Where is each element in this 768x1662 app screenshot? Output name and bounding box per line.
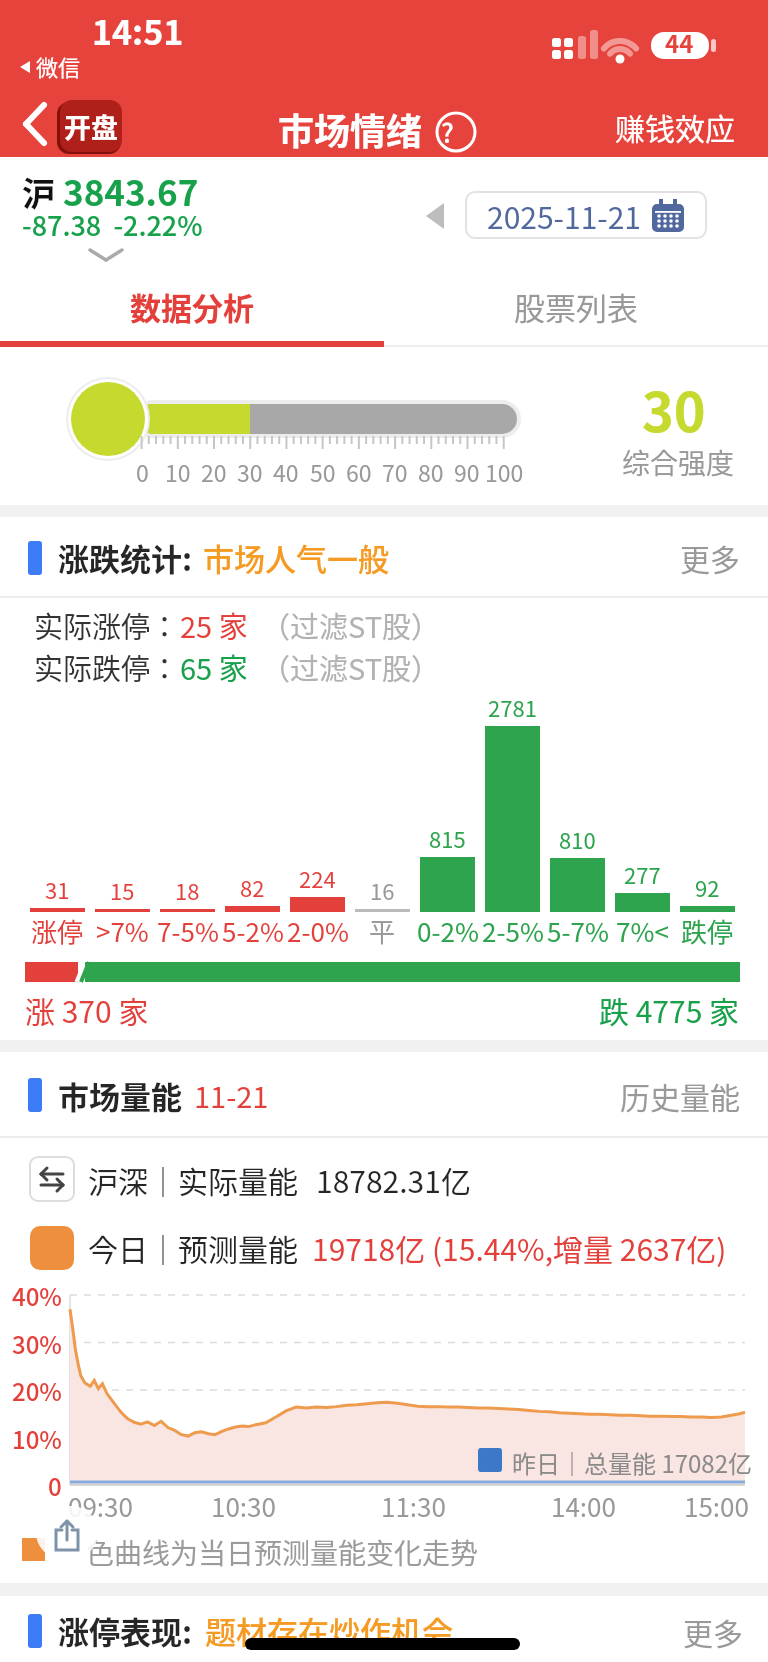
staticText: 跌停	[681, 912, 734, 950]
staticText: 31	[45, 873, 70, 905]
staticText: -87.38 -2.22%	[22, 205, 203, 244]
staticText: 18	[175, 874, 200, 906]
button[interactable]: 更多	[680, 536, 740, 579]
staticText: 277	[624, 858, 661, 890]
staticText: 赚钱效应	[615, 105, 735, 148]
button[interactable]: 股票列表	[384, 272, 768, 341]
staticText: 市场情绪	[278, 103, 423, 155]
staticText: （过滤ST股）	[248, 646, 441, 688]
staticText: 今日｜预测量能	[88, 1226, 298, 1269]
staticText: 70	[382, 455, 408, 488]
staticText: 微信	[36, 50, 81, 82]
staticText: 更多	[680, 536, 740, 579]
staticText: 10%	[12, 1421, 62, 1456]
staticText: 2-5%	[482, 912, 544, 950]
staticText: 10:30	[211, 1487, 276, 1525]
staticText: 5-7%	[547, 912, 609, 950]
staticText: 14:00	[551, 1487, 616, 1525]
button[interactable]: 数据分析	[0, 272, 384, 341]
staticText: 60	[346, 455, 372, 488]
staticText: 5-2%	[222, 912, 284, 950]
staticText: 10	[165, 455, 191, 488]
button[interactable]: 更多	[683, 1610, 743, 1653]
button[interactable]: 开盘	[60, 100, 122, 152]
staticText: 80	[418, 455, 444, 488]
staticText: 0-2%	[417, 912, 479, 950]
staticText: 平	[369, 912, 396, 950]
staticText: 2-0%	[287, 912, 349, 950]
staticText: 0	[48, 1468, 62, 1503]
staticText: 16	[370, 874, 395, 906]
staticText: 实际涨停：	[34, 604, 180, 646]
staticText: 题材存在炒作机会	[205, 1608, 453, 1653]
staticText: 65 家	[180, 646, 248, 688]
staticText: 数据分析	[130, 284, 254, 329]
staticText: 涨跌统计:	[58, 535, 193, 580]
staticText: 20	[201, 455, 227, 488]
staticText: ?	[441, 113, 454, 151]
button[interactable]: 历史量能	[620, 1074, 740, 1117]
button[interactable]	[14, 96, 60, 152]
staticText: >7%	[96, 912, 149, 950]
staticText: 40	[273, 455, 299, 488]
staticText: 涨停表现:	[58, 1608, 193, 1653]
staticText: 沪深｜实际量能	[88, 1158, 298, 1201]
staticText: 0	[136, 455, 149, 488]
staticText: 18782.31亿	[316, 1158, 471, 1201]
button[interactable]	[424, 203, 446, 229]
button[interactable]: 赚钱效应	[615, 105, 735, 148]
staticText: 50	[310, 455, 336, 488]
staticText: 沪	[22, 168, 55, 216]
staticText: 7-5%	[157, 912, 219, 950]
staticText: （过滤ST股）	[248, 604, 441, 646]
staticText: 开盘	[64, 107, 118, 146]
staticText: 15	[110, 874, 135, 906]
staticText: 11:30	[381, 1487, 446, 1525]
staticText: 7%<	[616, 912, 669, 950]
staticText: 30%	[12, 1326, 62, 1361]
staticText: 14:51	[92, 6, 184, 55]
staticText: 11-21	[194, 1074, 269, 1116]
staticText: 810	[559, 823, 596, 855]
staticText: 15:00	[684, 1487, 749, 1525]
button[interactable]: 2025-11-21	[465, 191, 707, 239]
staticText: 815	[429, 822, 466, 854]
staticText: 25 家	[180, 604, 248, 646]
staticText: 市场量能	[58, 1073, 182, 1118]
staticText: 224	[299, 862, 336, 894]
staticText: 3843.67	[63, 165, 199, 216]
staticText: 2025-11-21	[487, 194, 642, 237]
staticText: 82	[240, 871, 265, 903]
staticText: 市场人气一般	[203, 535, 389, 580]
staticText: 92	[695, 871, 720, 903]
staticText: 100	[485, 455, 524, 488]
staticText: 色曲线为当日预测量能变化走势	[86, 1532, 479, 1573]
staticText: 19718亿 (15.44%,增量 2637亿)	[312, 1226, 727, 1269]
staticText: 30	[237, 455, 263, 488]
staticText: 综合强度	[622, 442, 735, 483]
staticText: 更多	[683, 1610, 743, 1653]
staticText: 昨日｜总量能 17082亿	[512, 1445, 752, 1480]
staticText: 2781	[488, 691, 537, 723]
staticText: 30	[642, 369, 706, 447]
staticText: 90	[454, 455, 480, 488]
staticText: 20%	[12, 1373, 62, 1408]
staticText: 涨停	[31, 912, 84, 950]
staticText: 跌 4775 家	[599, 988, 740, 1031]
staticText: 09:30	[68, 1487, 133, 1525]
staticText: 实际跌停：	[34, 646, 180, 688]
button[interactable]	[36, 1506, 98, 1559]
staticText: 历史量能	[620, 1074, 740, 1117]
staticText: 44	[665, 25, 694, 60]
staticText: 股票列表	[514, 284, 638, 329]
staticText: 40%	[12, 1278, 62, 1313]
staticText: 涨 370 家	[25, 988, 149, 1031]
